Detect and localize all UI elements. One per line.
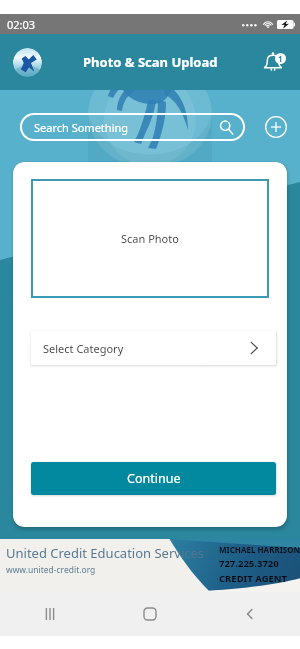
staticText: 02:03	[7, 17, 36, 32]
staticText: 1	[278, 53, 283, 64]
button[interactable]: Notifications	[257, 46, 289, 78]
staticText: 727.225.3720	[219, 557, 279, 570]
button[interactable]: Select Category	[31, 331, 276, 365]
button[interactable]: Add	[265, 116, 287, 138]
button[interactable]: Home	[128, 592, 172, 636]
button[interactable]: Continue	[31, 462, 276, 495]
staticText: CREDIT AGENT	[219, 572, 288, 585]
staticText: Scan Photo	[121, 231, 179, 246]
button[interactable]: Scan Photo	[31, 179, 269, 298]
staticText: MICHAEL HARRISON	[219, 544, 300, 555]
button[interactable]: Back	[228, 592, 272, 636]
staticText: Photo & Scan Upload	[83, 53, 218, 71]
staticText: Search Something	[34, 120, 219, 135]
button[interactable]: App logo	[13, 48, 42, 77]
staticText: United Credit Education Services	[6, 544, 205, 562]
staticText: Continue	[127, 470, 181, 487]
button[interactable]: Advertisement	[0, 539, 300, 592]
staticText: Select Category	[43, 341, 246, 356]
staticText: www.united-credit.org	[6, 564, 96, 576]
button[interactable]: Search Something	[20, 113, 245, 141]
button[interactable]: Recents	[28, 592, 72, 636]
